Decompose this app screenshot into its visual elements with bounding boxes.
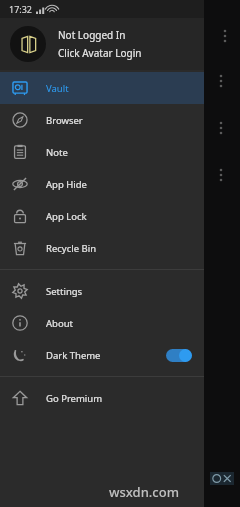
button[interactable]: About [0, 307, 204, 339]
staticText: About [46, 317, 204, 330]
staticText: Settings [46, 285, 204, 298]
button[interactable]: More options [214, 72, 228, 90]
staticText: Dark Theme [46, 349, 166, 362]
staticText: 17:32 [9, 3, 33, 15]
button[interactable]: Note [0, 136, 204, 168]
staticText: Vault [46, 82, 204, 95]
button[interactable]: Settings [0, 275, 204, 307]
button[interactable]: Browser [0, 104, 204, 136]
button[interactable]: Close ad [210, 472, 234, 485]
button[interactable]: More options [214, 119, 228, 137]
button[interactable]: Dark Theme [0, 339, 204, 371]
staticText: App Lock [46, 210, 204, 223]
button[interactable]: App Lock [0, 200, 204, 232]
button[interactable]: More options [214, 166, 228, 184]
staticText: App Hide [46, 178, 204, 191]
staticText: Not Logged In [58, 28, 126, 42]
button[interactable]: App Hide [0, 168, 204, 200]
staticText: Browser [46, 114, 204, 127]
staticText: Go Premium [46, 392, 204, 405]
button[interactable]: Dark Theme toggle [166, 349, 192, 362]
staticText: wsxdn.com [109, 483, 179, 501]
button[interactable]: Not Logged In [0, 18, 204, 70]
button[interactable]: Go Premium [0, 382, 204, 414]
button[interactable]: More options [218, 27, 232, 45]
staticText: Click Avatar Login [58, 46, 142, 60]
button[interactable]: Vault [0, 72, 204, 104]
staticText: Recycle Bin [46, 242, 204, 255]
button[interactable]: Recycle Bin [0, 232, 204, 264]
staticText: Note [46, 146, 204, 159]
